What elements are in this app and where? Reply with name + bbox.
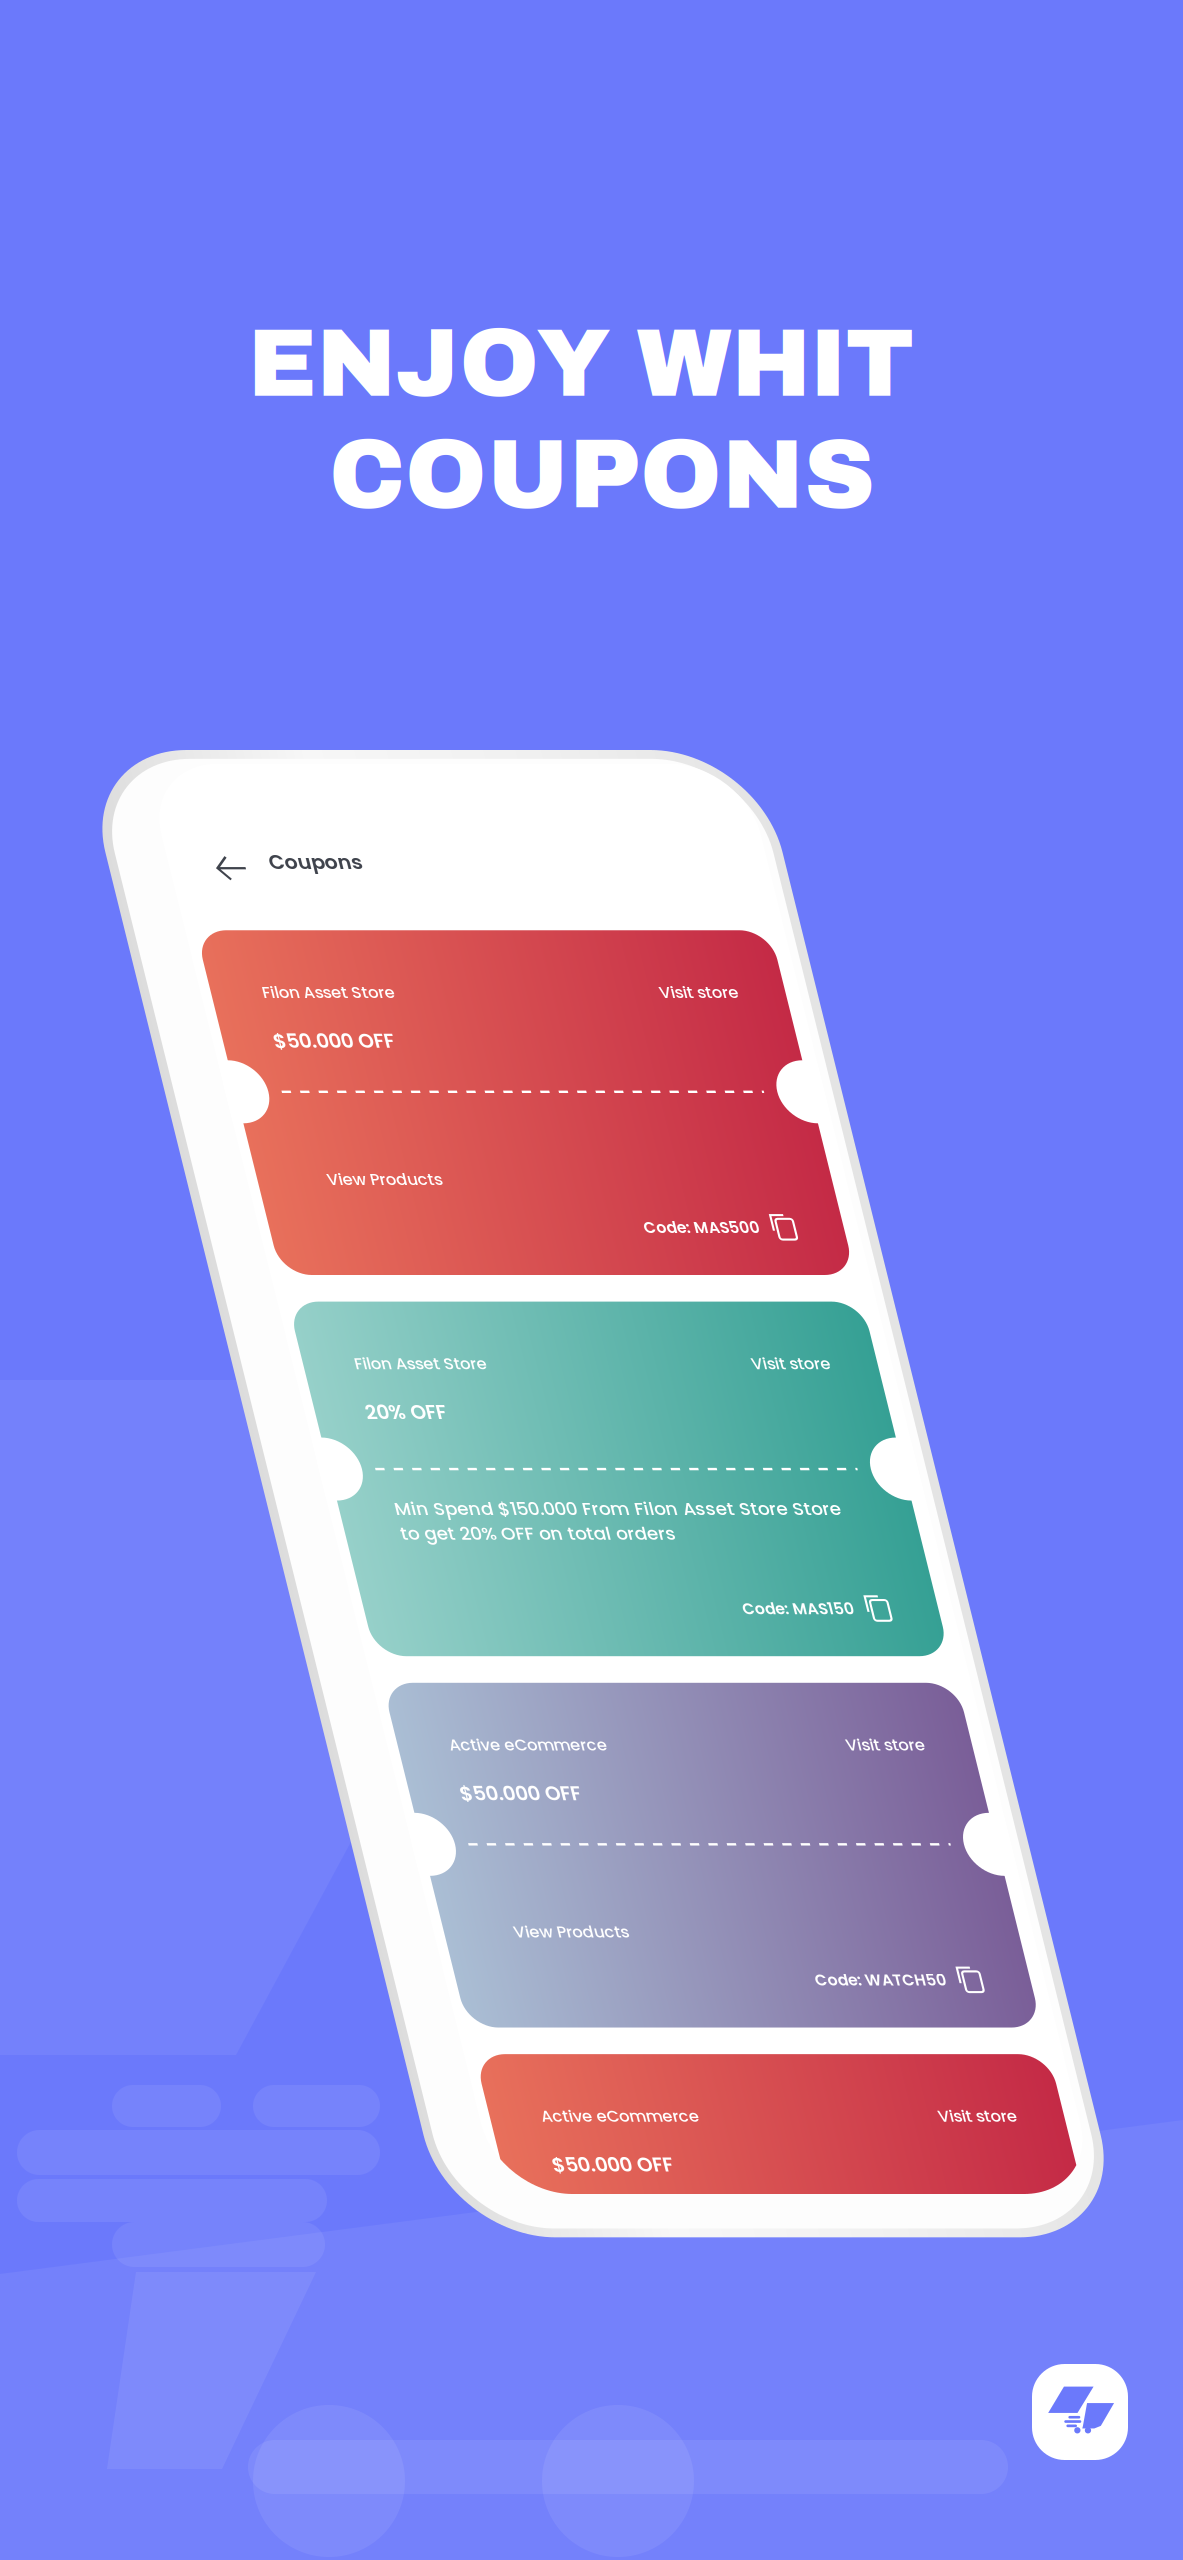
button[interactable]: Active eCommerce xyxy=(149,2074,709,2424)
button[interactable]: Brand logo xyxy=(1032,2364,1128,2460)
staticText: View Products xyxy=(217,1939,329,1961)
staticText: Active eCommerce xyxy=(199,1749,353,1771)
staticText: Min Spend $150.000 From Filon Asset Stor… xyxy=(203,1508,638,1558)
staticText: $50.000 OFF xyxy=(198,2173,316,2200)
staticText: Code: WATCH50 xyxy=(499,1988,627,2010)
staticText: COUPONS xyxy=(329,422,875,528)
staticText: WHIT xyxy=(636,312,914,416)
staticText: Filon Asset Store xyxy=(199,985,328,1007)
staticText: Visit store xyxy=(586,985,663,1007)
staticText: Active eCommerce xyxy=(199,2126,353,2148)
staticText: Filon Asset Store xyxy=(199,1362,328,1384)
staticText: Visit store xyxy=(586,1749,663,1771)
staticText: Visit store xyxy=(586,1362,663,1384)
staticText: $50.000 OFF xyxy=(198,1032,316,1059)
staticText: View Products xyxy=(217,2316,329,2338)
button[interactable]: Filon Asset Store xyxy=(149,933,709,1283)
staticText: Code: MAS500 xyxy=(514,1224,627,1246)
staticText: Code: MAS150 xyxy=(518,1611,627,1633)
staticText: ENJOY xyxy=(247,312,610,416)
staticText: Coupons xyxy=(237,850,328,878)
button[interactable]: Active eCommerce xyxy=(149,1697,709,2047)
staticText: 20% OFF xyxy=(198,1409,277,1436)
button[interactable]: Back xyxy=(175,848,223,892)
staticText: View Products xyxy=(217,1175,329,1197)
button[interactable]: Filon Asset Store xyxy=(149,1310,709,1670)
